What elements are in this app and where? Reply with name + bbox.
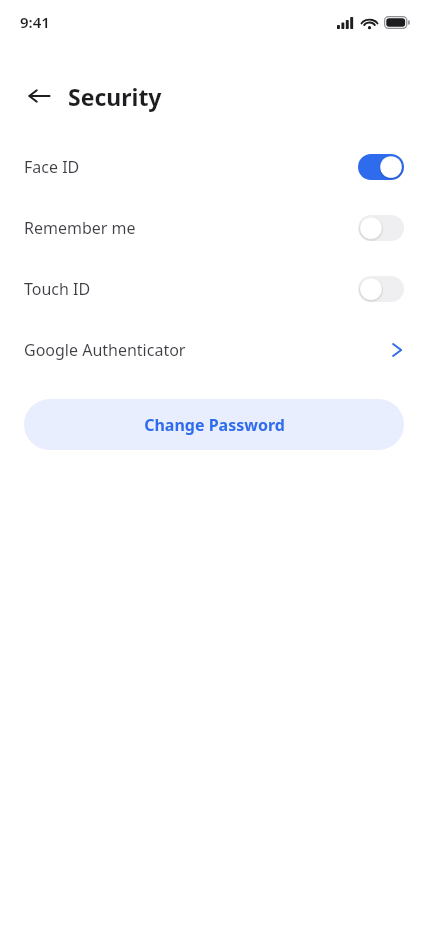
staticText: Touch ID: [24, 278, 91, 300]
staticText: Change Password: [144, 414, 285, 436]
other: On: [358, 154, 404, 180]
button[interactable]: Remember me: [0, 197, 428, 258]
button[interactable]: Touch ID: [0, 258, 428, 319]
button[interactable]: Face ID: [0, 136, 428, 197]
other: Off: [358, 276, 404, 302]
button[interactable]: Google Authenticator: [0, 319, 428, 380]
staticText: 9:41: [20, 12, 50, 32]
staticText: Google Authenticator: [24, 339, 186, 361]
button[interactable]: Change Password: [24, 399, 404, 450]
staticText: Face ID: [24, 156, 80, 178]
button[interactable]: Back: [16, 73, 62, 119]
other: Off: [358, 215, 404, 241]
other: Open Google Authenticator: [390, 340, 404, 360]
staticText: Remember me: [24, 217, 136, 239]
staticText: Security: [68, 81, 162, 112]
